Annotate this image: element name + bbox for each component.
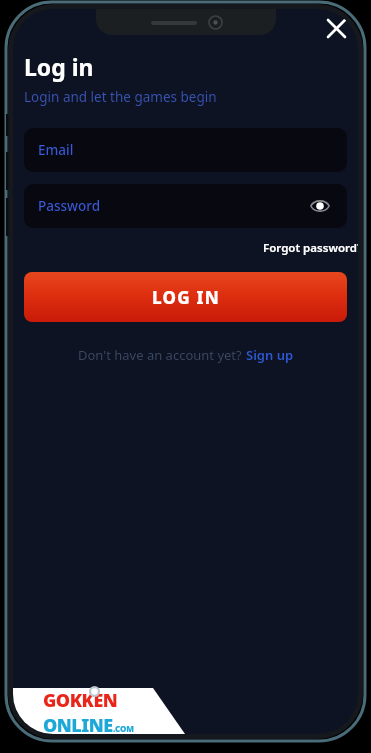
- staticText: ONLINE: [43, 713, 113, 734]
- staticText: Email: [38, 141, 74, 159]
- button[interactable]: Password: [24, 184, 347, 228]
- staticText: Don't have an account yet?: [78, 346, 246, 364]
- staticText: GOKKEN: [43, 688, 118, 713]
- staticText: Log in: [24, 51, 94, 82]
- button[interactable]: LOG IN: [24, 272, 347, 322]
- button[interactable]: Close: [314, 15, 358, 41]
- staticText: Forgot password?: [263, 240, 358, 256]
- staticText: .COM: [113, 723, 135, 734]
- button[interactable]: Email: [24, 128, 347, 172]
- staticText: LOG IN: [152, 286, 220, 309]
- staticText: Password: [38, 197, 101, 215]
- button[interactable]: Show password: [307, 193, 333, 219]
- button[interactable]: Sign up: [246, 346, 294, 364]
- staticText: Sign up: [246, 346, 294, 364]
- staticText: Login and let the games begin: [24, 88, 217, 106]
- button[interactable]: Forgot password?: [263, 238, 358, 258]
